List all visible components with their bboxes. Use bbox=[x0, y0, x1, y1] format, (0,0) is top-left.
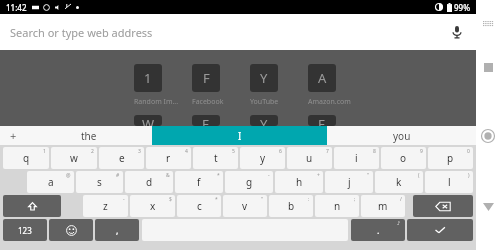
staticText: y bbox=[260, 151, 266, 165]
staticText: q bbox=[23, 151, 30, 165]
staticText: Amazon.com bbox=[308, 97, 351, 107]
staticText: + bbox=[10, 128, 17, 143]
staticText: Y bbox=[260, 69, 268, 87]
button[interactable]: the bbox=[26, 126, 152, 145]
staticText: w bbox=[70, 151, 78, 165]
staticText: h bbox=[296, 175, 303, 189]
staticText: ) bbox=[468, 172, 470, 179]
button[interactable]: e bbox=[99, 147, 144, 169]
button[interactable]: a bbox=[27, 171, 74, 193]
button[interactable]: l bbox=[425, 171, 473, 193]
button[interactable]: Voice search bbox=[446, 21, 468, 43]
staticText: , bbox=[116, 224, 119, 236]
button[interactable]: I bbox=[152, 126, 327, 145]
button[interactable]: n bbox=[315, 195, 359, 217]
staticText: + bbox=[317, 172, 320, 179]
staticText: E bbox=[202, 115, 210, 126]
button[interactable]: Emoji bbox=[49, 219, 93, 241]
button[interactable]: Add word bbox=[0, 126, 26, 145]
button[interactable]: w bbox=[51, 147, 97, 169]
button[interactable]: o bbox=[381, 147, 426, 169]
staticText: u bbox=[306, 151, 313, 165]
staticText: s bbox=[97, 175, 102, 189]
staticText: 7 bbox=[326, 148, 329, 155]
button[interactable]: z bbox=[83, 195, 128, 217]
button[interactable]: b bbox=[269, 195, 313, 217]
button[interactable]: q bbox=[3, 147, 49, 169]
staticText: ( bbox=[418, 172, 420, 179]
staticText: 6 bbox=[279, 148, 282, 155]
staticText: k bbox=[396, 175, 402, 189]
staticText: you bbox=[393, 129, 411, 143]
staticText: c bbox=[197, 199, 202, 213]
staticText: $ bbox=[169, 196, 172, 203]
staticText: " bbox=[367, 172, 370, 179]
button[interactable]: . bbox=[351, 219, 405, 241]
staticText: e bbox=[119, 151, 125, 165]
staticText: n bbox=[334, 199, 341, 213]
staticText: a bbox=[48, 175, 54, 189]
staticText: t bbox=[214, 151, 218, 165]
button[interactable]: r bbox=[146, 147, 191, 169]
button[interactable]: d bbox=[125, 171, 173, 193]
button[interactable]: Hide keyboard bbox=[478, 14, 498, 34]
staticText: x bbox=[150, 199, 156, 213]
button[interactable]: Enter bbox=[407, 219, 473, 241]
staticText: p bbox=[447, 151, 454, 165]
staticText: 8 bbox=[373, 148, 376, 155]
button[interactable]: W bbox=[134, 115, 162, 126]
staticText: 123 bbox=[18, 225, 32, 236]
button[interactable]: Shift bbox=[3, 195, 61, 217]
button[interactable]: f bbox=[175, 171, 223, 193]
staticText: 2 bbox=[91, 148, 94, 155]
staticText: j bbox=[348, 175, 351, 189]
button[interactable]: Home bbox=[477, 125, 499, 147]
button[interactable]: t bbox=[193, 147, 238, 169]
button[interactable]: g bbox=[225, 171, 273, 193]
staticText: . bbox=[377, 224, 380, 236]
staticText: / bbox=[400, 196, 402, 203]
staticText: f bbox=[197, 175, 201, 189]
button[interactable]: E bbox=[192, 115, 220, 126]
button[interactable]: Recent apps bbox=[478, 57, 498, 77]
staticText: F bbox=[203, 69, 210, 87]
button[interactable]: i bbox=[334, 147, 379, 169]
button[interactable]: F bbox=[192, 64, 250, 107]
button[interactable]: Backspace bbox=[413, 195, 473, 217]
staticText: " bbox=[261, 196, 264, 203]
button[interactable]: 123 bbox=[3, 219, 47, 241]
staticText: A bbox=[318, 69, 327, 87]
staticText: v bbox=[242, 199, 248, 213]
staticText: g bbox=[246, 175, 253, 189]
button[interactable]: 1 bbox=[134, 64, 192, 107]
staticText: - bbox=[123, 196, 125, 203]
button[interactable]: E bbox=[308, 115, 336, 126]
button[interactable]: you bbox=[327, 126, 476, 145]
button[interactable]: Y bbox=[250, 115, 278, 126]
button[interactable]: k bbox=[375, 171, 423, 193]
button[interactable]: m bbox=[361, 195, 405, 217]
staticText: : bbox=[308, 196, 310, 203]
button[interactable]: p bbox=[428, 147, 473, 169]
staticText: Y bbox=[260, 115, 268, 126]
staticText: o bbox=[400, 151, 407, 165]
button[interactable]: s bbox=[76, 171, 123, 193]
staticText: 99% bbox=[454, 2, 470, 13]
button[interactable]: v bbox=[223, 195, 267, 217]
button[interactable]: , bbox=[95, 219, 139, 241]
button[interactable]: x bbox=[130, 195, 175, 217]
button[interactable]: h bbox=[275, 171, 323, 193]
button[interactable]: c bbox=[177, 195, 221, 217]
button[interactable]: u bbox=[287, 147, 332, 169]
button[interactable]: j bbox=[325, 171, 373, 193]
button[interactable]: y bbox=[240, 147, 285, 169]
staticText: Facebook bbox=[192, 97, 224, 107]
staticText: z bbox=[103, 199, 108, 213]
button[interactable]: A bbox=[308, 64, 366, 107]
button[interactable]: Back bbox=[478, 197, 498, 217]
button[interactable]: Search or type web address bbox=[0, 14, 476, 50]
staticText: * bbox=[215, 196, 218, 203]
staticText: W bbox=[142, 115, 155, 126]
button[interactable]: Y bbox=[250, 64, 308, 107]
